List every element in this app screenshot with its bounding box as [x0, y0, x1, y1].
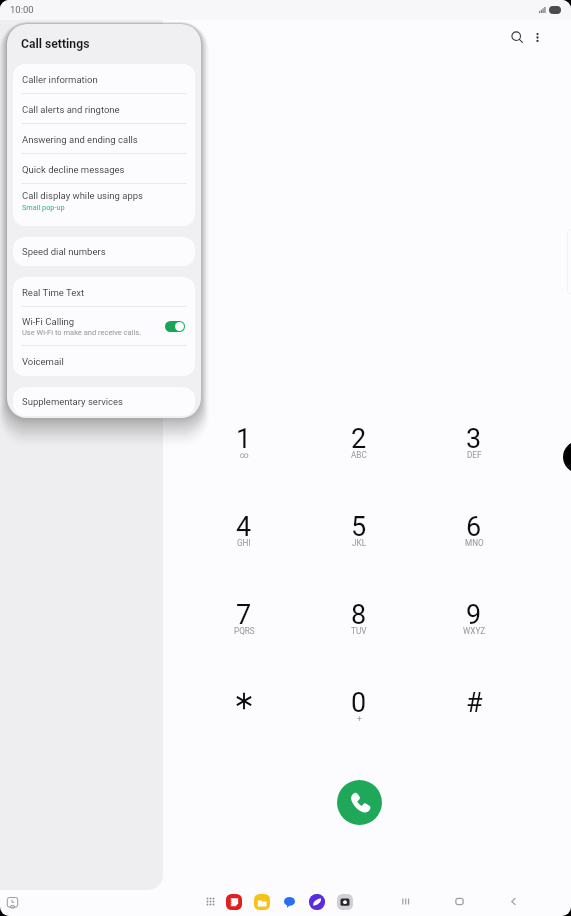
- button[interactable]: Back: [501, 889, 525, 913]
- staticText: PQRS: [234, 626, 255, 636]
- button[interactable]: Recent apps: [393, 889, 417, 913]
- button[interactable]: 2: [317, 408, 401, 468]
- staticText: Quick decline messages: [22, 164, 125, 175]
- button[interactable]: Wi-Fi Calling: [13, 307, 195, 346]
- button[interactable]: Caller information: [13, 64, 195, 94]
- button[interactable]: More options: [524, 24, 550, 50]
- button[interactable]: Call: [337, 780, 382, 825]
- staticText: 9: [466, 599, 482, 631]
- button[interactable]: Answering and ending calls: [13, 124, 195, 154]
- staticText: Wi-Fi Calling: [22, 316, 75, 327]
- button[interactable]: [202, 672, 286, 732]
- button[interactable]: Notes: [226, 894, 242, 910]
- button[interactable]: 8: [317, 584, 401, 644]
- button[interactable]: 0: [317, 672, 401, 732]
- button[interactable]: Screenshot: [5, 895, 19, 909]
- staticText: DEF: [467, 450, 482, 460]
- button[interactable]: Search: [504, 24, 530, 50]
- staticText: Speed dial numbers: [22, 246, 106, 257]
- staticText: GHI: [237, 538, 251, 548]
- button[interactable]: 3: [432, 408, 516, 468]
- button[interactable]: #: [432, 672, 516, 732]
- staticText: 4: [236, 511, 252, 543]
- button[interactable]: 7: [202, 584, 286, 644]
- staticText: Caller information: [22, 74, 98, 85]
- button[interactable]: Internet: [309, 894, 325, 910]
- button[interactable]: Speed dial numbers: [13, 237, 195, 266]
- staticText: 6: [466, 511, 482, 543]
- staticText: 10:00: [10, 4, 34, 15]
- staticText: Answering and ending calls: [22, 134, 138, 145]
- staticText: Voicemail: [22, 356, 64, 367]
- staticText: #: [466, 687, 483, 719]
- staticText: Supplementary services: [22, 396, 124, 407]
- staticText: 2: [351, 423, 367, 455]
- staticText: MNO: [465, 538, 484, 548]
- button[interactable]: 1: [202, 408, 286, 468]
- staticText: 3: [466, 423, 482, 455]
- staticText: JKL: [352, 538, 367, 548]
- staticText: TUV: [351, 626, 367, 636]
- button[interactable]: Voicemail: [13, 346, 195, 376]
- button[interactable]: Messages: [281, 894, 297, 910]
- staticText: Call settings: [21, 37, 90, 51]
- button[interactable]: 4: [202, 496, 286, 556]
- button[interactable]: Home: [447, 889, 471, 913]
- button[interactable]: 5: [317, 496, 401, 556]
- button[interactable]: 6: [432, 496, 516, 556]
- staticText: Real Time Text: [22, 287, 85, 298]
- staticText: +: [357, 714, 362, 724]
- staticText: 1: [236, 423, 252, 455]
- staticText: 8: [351, 599, 367, 631]
- button[interactable]: Camera: [337, 894, 353, 910]
- button[interactable]: Files: [254, 894, 270, 910]
- button[interactable]: Call alerts and ringtone: [13, 94, 195, 124]
- staticText: WXYZ: [463, 626, 486, 636]
- staticText: ABC: [351, 450, 367, 460]
- button[interactable]: 9: [432, 584, 516, 644]
- staticText: 0: [351, 687, 367, 719]
- button[interactable]: Quick decline messages: [13, 154, 195, 184]
- staticText: Use Wi-Fi to make and receive calls.: [22, 328, 142, 337]
- button[interactable]: Apps: [200, 891, 220, 911]
- staticText: 5: [351, 511, 367, 543]
- staticText: Call alerts and ringtone: [22, 104, 120, 115]
- staticText: Call display while using apps: [22, 190, 144, 201]
- button[interactable]: Real Time Text: [13, 277, 195, 307]
- button[interactable]: Call display while using apps: [13, 184, 195, 217]
- staticText: ∞: [240, 450, 249, 460]
- staticText: 7: [236, 599, 252, 631]
- button[interactable]: Supplementary services: [13, 387, 195, 416]
- staticText: Small pop-up: [22, 203, 65, 212]
